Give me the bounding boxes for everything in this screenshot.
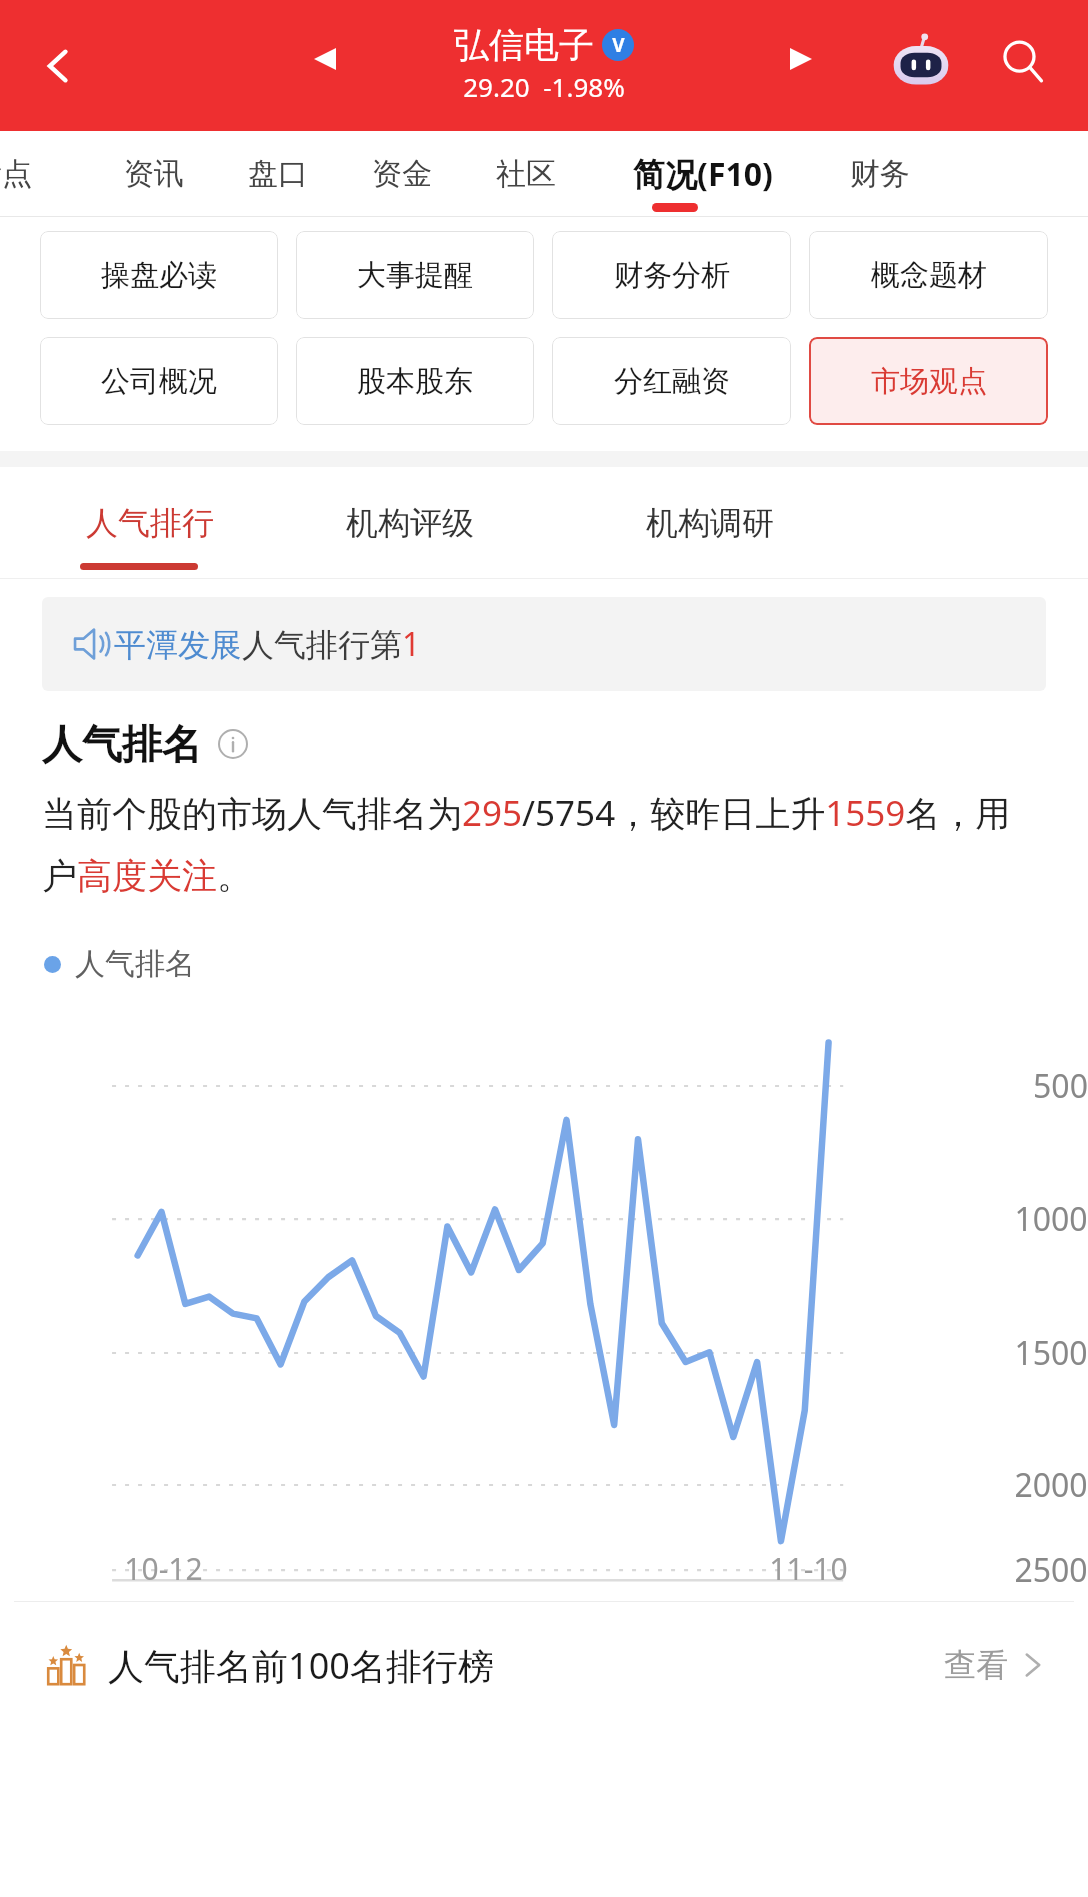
- staticText: 财务: [850, 155, 910, 193]
- button[interactable]: 财务: [818, 131, 942, 217]
- staticText: 平潭发展人气排行第1: [114, 622, 421, 666]
- staticText: 财务分析: [614, 257, 730, 294]
- button[interactable]: 社区: [464, 131, 588, 217]
- button[interactable]: AI assistant: [884, 24, 958, 98]
- staticText: 市场观点: [871, 363, 987, 400]
- staticText: 人气排行: [86, 503, 214, 543]
- button[interactable]: 人气排行: [40, 467, 260, 579]
- staticText: 股本股东: [357, 363, 473, 400]
- button[interactable]: 市场观点: [809, 337, 1048, 425]
- button[interactable]: 盘口: [216, 131, 340, 217]
- button[interactable]: Previous stock: [300, 34, 350, 84]
- button[interactable]: Back: [30, 38, 86, 94]
- staticText: 机构调研: [646, 503, 774, 543]
- staticText: 11-10: [769, 1548, 848, 1589]
- staticText: 弘信电子: [454, 23, 594, 67]
- staticText: 人气排名前100名排行榜: [108, 1641, 494, 1690]
- button[interactable]: Next stock: [776, 34, 826, 84]
- button[interactable]: 平潭发展人气排行第1: [42, 597, 1046, 691]
- button[interactable]: 资金: [340, 131, 464, 217]
- staticText: 看点: [0, 155, 32, 193]
- button[interactable]: 机构评级: [260, 467, 560, 579]
- button[interactable]: Info: [216, 727, 250, 761]
- staticText: 500: [1033, 1064, 1088, 1108]
- button[interactable]: Search: [988, 26, 1058, 96]
- button[interactable]: 公司概况: [40, 337, 278, 425]
- staticText: 机构评级: [346, 503, 474, 543]
- staticText: 29.20 -1.98%: [463, 69, 625, 104]
- button[interactable]: 资讯: [92, 131, 216, 217]
- button[interactable]: 看点: [0, 131, 92, 217]
- staticText: 10-12: [124, 1548, 203, 1589]
- staticText: 概念题材: [871, 257, 987, 294]
- button[interactable]: 分红融资: [552, 337, 791, 425]
- button[interactable]: 概念题材: [809, 231, 1048, 319]
- staticText: 公司概况: [101, 363, 217, 400]
- staticText: 大事提醒: [357, 257, 473, 294]
- staticText: 2500: [1014, 1548, 1088, 1592]
- staticText: 简况(F10): [633, 152, 773, 196]
- button[interactable]: 财务分析: [552, 231, 791, 319]
- staticText: 资讯: [124, 155, 184, 193]
- staticText: 1000: [1014, 1197, 1088, 1241]
- staticText: 人气排名: [42, 719, 202, 769]
- staticText: V: [612, 32, 625, 58]
- button[interactable]: 股本股东: [296, 337, 534, 425]
- staticText: 分红融资: [614, 363, 730, 400]
- staticText: 当前个股的市场人气排名为295/5754，较昨日上升1559名，用户高度关注。: [42, 789, 1038, 899]
- button[interactable]: 人气排名前100名排行榜: [0, 1602, 1088, 1728]
- button[interactable]: 机构调研: [560, 467, 860, 579]
- staticText: 查看: [944, 1645, 1008, 1685]
- staticText: 盘口: [248, 155, 308, 193]
- button[interactable]: 操盘必读: [40, 231, 278, 319]
- staticText: 2000: [1014, 1463, 1088, 1507]
- staticText: 社区: [496, 155, 556, 193]
- staticText: 人气排名: [75, 945, 195, 983]
- staticText: 资金: [372, 155, 432, 193]
- button[interactable]: 大事提醒: [296, 231, 534, 319]
- staticText: 操盘必读: [101, 257, 217, 294]
- staticText: 1500: [1014, 1331, 1088, 1375]
- button[interactable]: 简况(F10): [588, 131, 818, 217]
